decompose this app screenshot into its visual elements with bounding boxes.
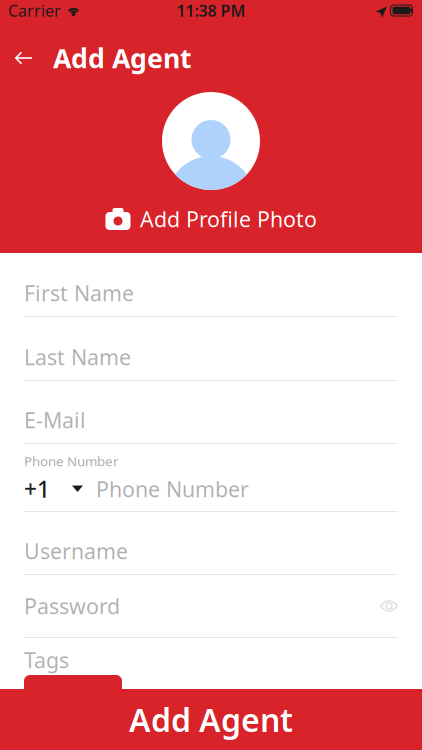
- staticText: Phone Number: [24, 452, 119, 470]
- staticText: Carrier: [8, 0, 61, 21]
- staticText: Add Agent: [53, 40, 192, 76]
- staticText: Add Profile Photo: [140, 205, 317, 233]
- button[interactable]: Add Profile Photo: [105, 85, 317, 232]
- button[interactable]: Add Agent: [0, 689, 422, 750]
- staticText: 11:38 PM: [176, 0, 245, 21]
- staticText: Password: [24, 592, 120, 620]
- staticText: Phone Number: [96, 475, 249, 503]
- staticText: E-Mail: [24, 406, 86, 434]
- staticText: First Name: [24, 279, 134, 307]
- button[interactable]: Show password: [380, 599, 398, 613]
- button[interactable]: Back: [0, 31, 53, 85]
- staticText: Tags: [24, 646, 69, 674]
- staticText: Last Name: [24, 343, 131, 371]
- staticText: Username: [24, 537, 128, 565]
- staticText: Add Agent: [129, 698, 293, 741]
- staticText: +1: [24, 474, 50, 504]
- button[interactable]: Country code +1: [24, 478, 96, 500]
